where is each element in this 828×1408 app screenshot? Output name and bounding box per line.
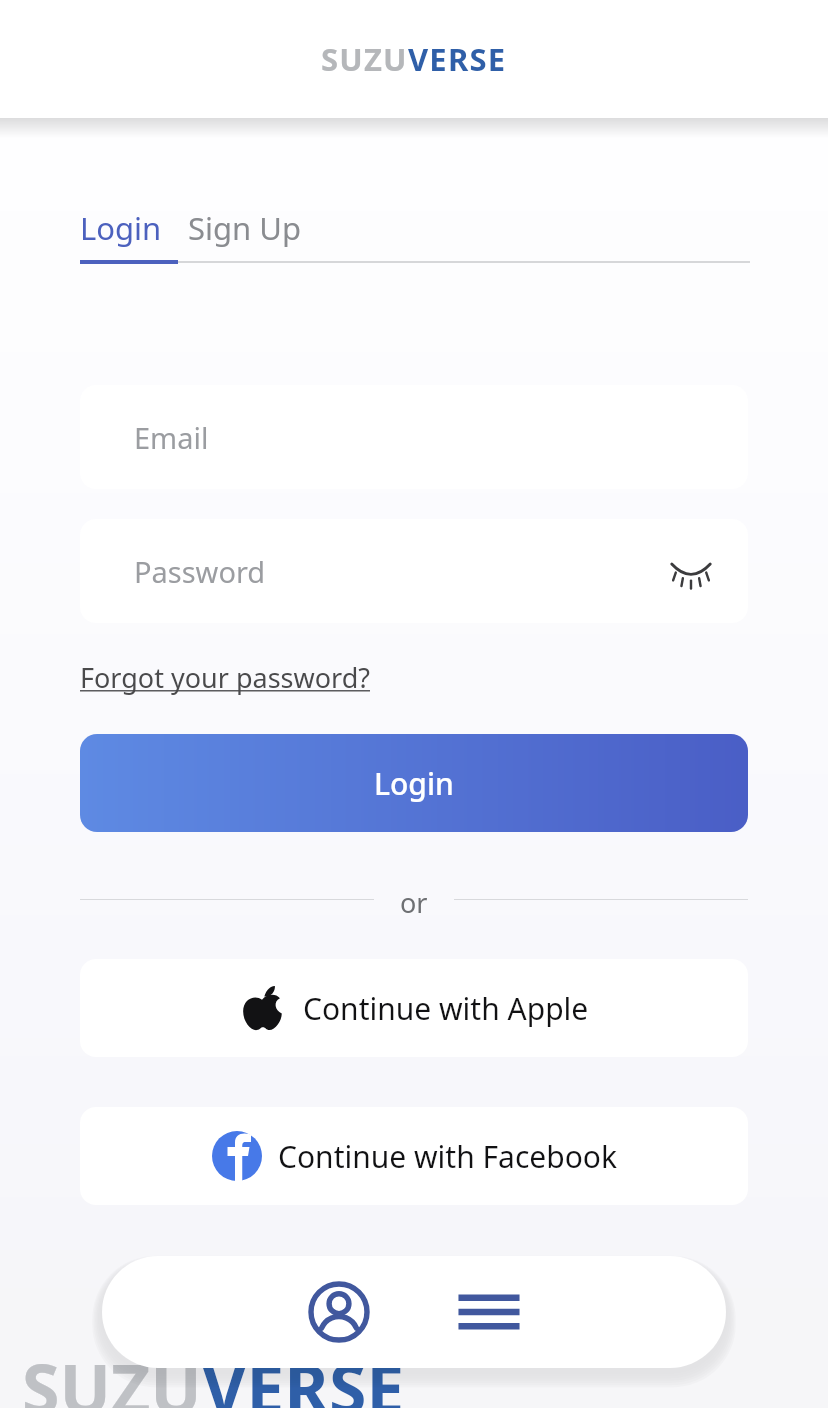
button[interactable]: Continue with Apple <box>80 959 748 1057</box>
button[interactable]: Password <box>80 519 748 623</box>
staticText: Continue with Apple <box>303 988 589 1029</box>
staticText: Sign Up <box>188 207 302 249</box>
staticText: Forgot your password? <box>80 659 371 696</box>
staticText: Email <box>134 418 209 457</box>
button[interactable]: Show password <box>662 542 720 600</box>
staticText: SUZU <box>22 1341 202 1408</box>
button[interactable]: Account <box>297 1270 381 1354</box>
staticText: Password <box>134 552 266 591</box>
staticText: Login <box>80 207 162 249</box>
button[interactable]: Sign Up <box>188 207 302 249</box>
staticText: SUZU <box>321 38 408 80</box>
staticText: VERSE <box>202 1341 405 1408</box>
button[interactable]: Menu <box>447 1270 531 1354</box>
staticText: Continue with Facebook <box>278 1136 617 1177</box>
button[interactable]: Continue with Facebook <box>80 1107 748 1205</box>
button[interactable]: Email <box>80 385 748 489</box>
staticText: VERSE <box>408 38 507 80</box>
button[interactable]: Login <box>80 734 748 832</box>
staticText: Login <box>374 763 454 804</box>
button[interactable]: Forgot your password? <box>80 659 371 696</box>
staticText: or <box>400 884 428 914</box>
button[interactable]: Login <box>80 207 188 249</box>
